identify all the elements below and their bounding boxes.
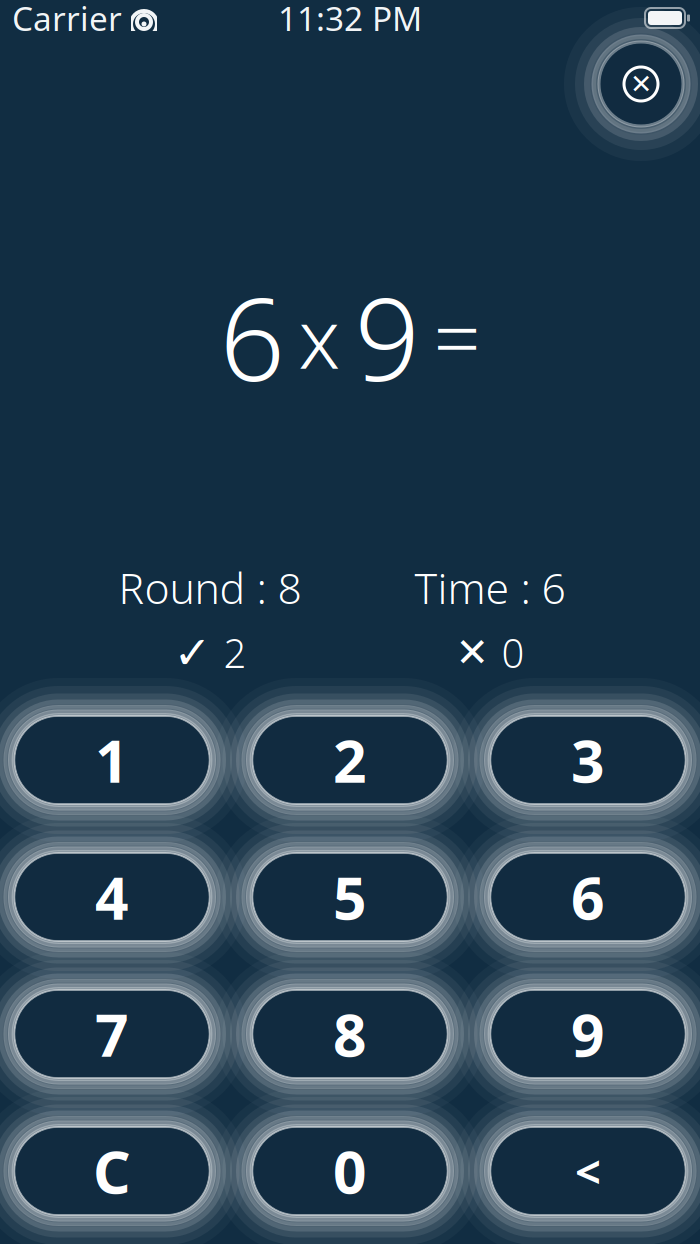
button[interactable]: 0	[253, 1128, 446, 1214]
staticText: 11:32 PM	[278, 0, 422, 40]
staticText: 8	[333, 995, 367, 1073]
staticText: Time : 6	[414, 559, 565, 616]
staticText: 9	[571, 995, 605, 1073]
button[interactable]: C	[15, 1128, 208, 1214]
staticText: 0	[333, 1132, 367, 1210]
staticText: 9	[354, 260, 419, 413]
button[interactable]: 8	[253, 991, 446, 1077]
button[interactable]: 9	[491, 991, 684, 1077]
staticText: 4	[95, 858, 129, 936]
staticText: 6	[571, 858, 605, 936]
button[interactable]: Close	[601, 44, 681, 124]
staticText: 2	[223, 626, 246, 679]
button[interactable]: <	[491, 1128, 684, 1214]
button[interactable]: 7	[15, 991, 208, 1077]
staticText: 5	[333, 858, 367, 936]
button[interactable]: 5	[253, 854, 446, 940]
button[interactable]: 1	[15, 717, 208, 803]
staticText: =	[433, 282, 480, 391]
staticText: 0	[501, 626, 524, 679]
staticText: Carrier	[12, 0, 122, 40]
staticText: Round : 8	[118, 559, 301, 616]
staticText: x	[298, 282, 340, 391]
staticText: C	[93, 1132, 131, 1210]
staticText: ✕	[630, 69, 652, 99]
staticText: ✕	[455, 630, 489, 675]
staticText: 1	[95, 721, 129, 799]
staticText: ✓	[173, 627, 211, 678]
staticText: 7	[95, 995, 129, 1073]
staticText: 3	[571, 721, 605, 799]
staticText: 6	[219, 260, 284, 413]
staticText: <	[575, 1141, 601, 1201]
button[interactable]: 3	[491, 717, 684, 803]
staticText: 2	[333, 721, 367, 799]
button[interactable]: 2	[253, 717, 446, 803]
button[interactable]: 4	[15, 854, 208, 940]
button[interactable]: 6	[491, 854, 684, 940]
